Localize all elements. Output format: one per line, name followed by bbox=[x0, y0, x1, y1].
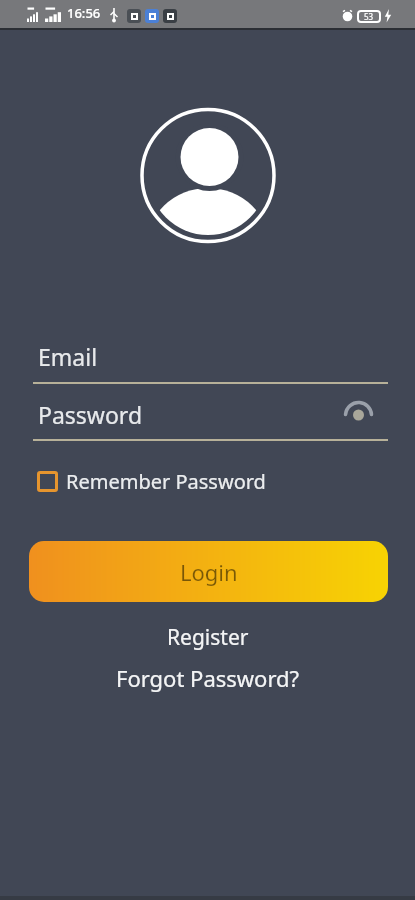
staticText: Remember Password bbox=[66, 468, 266, 495]
staticText: Register bbox=[167, 623, 249, 652]
staticText: 16:56 bbox=[67, 4, 101, 22]
button[interactable]: Remember Password bbox=[31, 462, 272, 501]
staticText: 53 bbox=[364, 11, 374, 22]
staticText: Login bbox=[180, 557, 238, 587]
staticText: Forgot Password? bbox=[116, 663, 300, 693]
staticText: Password bbox=[38, 399, 143, 430]
staticText: Email bbox=[38, 341, 98, 372]
button[interactable]: Forgot Password? bbox=[108, 661, 308, 695]
button[interactable]: Login bbox=[29, 541, 388, 602]
button[interactable]: Register bbox=[159, 621, 257, 654]
